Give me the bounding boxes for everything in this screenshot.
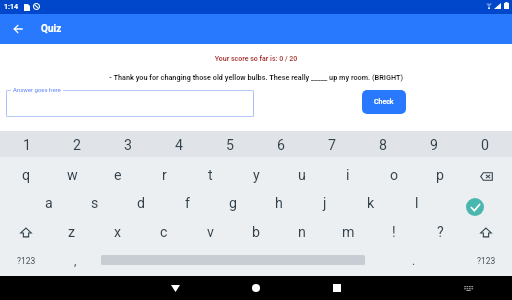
staticText: 7 [328, 137, 336, 154]
staticText: q [22, 167, 31, 184]
staticText: l [415, 195, 419, 212]
staticText: m [342, 224, 355, 241]
button[interactable]: Switch keyboard [456, 276, 480, 300]
staticText: n [298, 224, 306, 241]
button[interactable]: t [187, 157, 233, 186]
staticText: j [323, 195, 327, 212]
staticText: c [160, 224, 168, 241]
button[interactable]: Home [244, 276, 268, 300]
button[interactable]: x [95, 216, 141, 246]
staticText: , [74, 254, 77, 268]
staticText: u [298, 167, 306, 184]
staticText: 4 [175, 137, 183, 154]
staticText: 8 [379, 137, 387, 154]
staticText: a [45, 195, 53, 212]
button[interactable]: o [371, 157, 417, 186]
button[interactable]: Shift [463, 216, 509, 246]
button[interactable]: ? [417, 216, 463, 246]
button[interactable]: a [26, 186, 72, 216]
staticText: 5 [226, 137, 234, 154]
button[interactable]: n [279, 216, 325, 246]
button[interactable]: 8 [357, 131, 408, 157]
button[interactable]: q [3, 157, 49, 186]
button[interactable]: Recents [325, 276, 349, 300]
staticText: x [114, 224, 122, 241]
staticText: ? [437, 224, 444, 241]
button[interactable]: z [49, 216, 95, 246]
button[interactable]: Back [4, 14, 32, 44]
button[interactable]: b [233, 216, 279, 246]
button[interactable]: , [49, 246, 101, 276]
button[interactable]: Check [362, 90, 406, 114]
button[interactable]: i [325, 157, 371, 186]
button[interactable]: 1 [2, 131, 52, 157]
staticText: v [207, 224, 214, 241]
button[interactable]: . [365, 246, 463, 276]
button[interactable]: Space [101, 246, 365, 276]
staticText: Answer goes here [13, 86, 61, 93]
staticText: z [68, 224, 76, 241]
button[interactable]: r [141, 157, 187, 186]
button[interactable]: 5 [204, 131, 255, 157]
staticText: t [208, 167, 213, 184]
staticText: p [436, 167, 444, 184]
button[interactable]: m [325, 216, 371, 246]
button[interactable]: y [233, 157, 279, 186]
button[interactable]: k [348, 186, 394, 216]
button[interactable]: e [95, 157, 141, 186]
button[interactable]: f [164, 186, 210, 216]
staticText: 1:14 [4, 2, 19, 10]
staticText: Quiz [41, 23, 62, 35]
staticText: ?123 [17, 256, 36, 266]
staticText: d [137, 195, 146, 212]
staticText: Your score so far is: 0 / 20 [0, 55, 512, 63]
staticText: Check [374, 98, 394, 106]
staticText: 9 [430, 137, 438, 154]
button[interactable]: Back [163, 276, 187, 300]
staticText: - Thank you for changing those old yello… [0, 73, 512, 82]
button[interactable]: u [279, 157, 325, 186]
button[interactable]: Answer goes here [6, 90, 254, 117]
staticText: e [114, 167, 122, 184]
button[interactable]: ! [371, 216, 417, 246]
staticText: 1 [23, 137, 31, 154]
staticText: ?123 [477, 256, 496, 266]
button[interactable]: j [302, 186, 348, 216]
button[interactable]: 4 [153, 131, 204, 157]
staticText: h [275, 195, 283, 212]
button[interactable]: w [49, 157, 95, 186]
button[interactable]: g [210, 186, 256, 216]
staticText: k [367, 195, 375, 212]
button[interactable]: Enter [440, 186, 509, 216]
button[interactable]: s [72, 186, 118, 216]
staticText: i [346, 167, 350, 184]
staticText: w [67, 167, 78, 184]
button[interactable]: ?123 [463, 246, 509, 276]
button[interactable]: 6 [255, 131, 306, 157]
button[interactable]: 3 [102, 131, 153, 157]
staticText: y [253, 167, 260, 184]
button[interactable]: 9 [408, 131, 459, 157]
staticText: r [162, 167, 167, 184]
staticText: s [91, 195, 99, 212]
staticText: o [390, 167, 399, 184]
button[interactable]: p [417, 157, 463, 186]
button[interactable]: 0 [459, 131, 510, 157]
staticText: f [185, 195, 190, 212]
staticText: g [229, 195, 237, 212]
button[interactable]: Backspace [463, 157, 509, 186]
staticText: b [252, 224, 260, 241]
staticText: 0 [481, 137, 489, 154]
staticText: ! [392, 224, 396, 241]
button[interactable]: Shift [3, 216, 49, 246]
button[interactable]: 7 [306, 131, 357, 157]
button[interactable]: c [141, 216, 187, 246]
button[interactable]: l [394, 186, 440, 216]
button[interactable]: 2 [52, 131, 102, 157]
staticText: 3 [124, 137, 132, 154]
staticText: 2 [73, 137, 81, 154]
button[interactable]: d [118, 186, 164, 216]
button[interactable]: v [187, 216, 233, 246]
button[interactable]: ?123 [3, 246, 49, 276]
button[interactable]: h [256, 186, 302, 216]
